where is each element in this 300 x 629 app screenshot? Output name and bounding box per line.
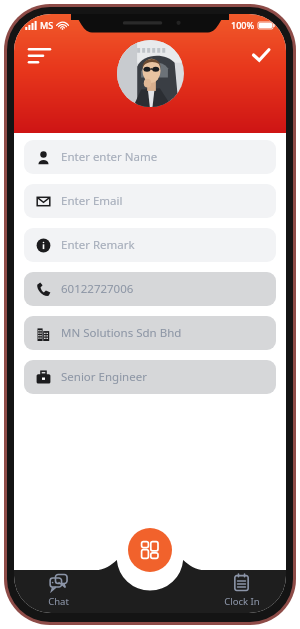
button[interactable]: Enter Remark [24, 228, 276, 262]
button[interactable]: Profile photo [117, 40, 184, 107]
staticText: Enter Email [61, 193, 123, 209]
staticText: MS [40, 19, 54, 31]
button[interactable]: Confirm [246, 40, 276, 70]
button[interactable]: Enter Email [24, 184, 276, 218]
staticText: Enter enter Name [61, 149, 158, 165]
button[interactable]: Clock In [197, 571, 286, 610]
button[interactable]: 60122727006 [24, 272, 276, 306]
button[interactable]: Chat [14, 571, 103, 610]
staticText: Enter Remark [61, 237, 135, 253]
button[interactable]: MN Solutions Sdn Bhd [24, 316, 276, 350]
staticText: MN Solutions Sdn Bhd [61, 325, 182, 341]
button[interactable]: Senior Engineer [24, 360, 276, 394]
staticText: Clock In [224, 595, 260, 608]
button[interactable]: Menu [26, 42, 56, 72]
staticText: 60122727006 [61, 281, 134, 297]
staticText: Senior Engineer [61, 369, 147, 385]
staticText: Chat [48, 595, 69, 608]
button[interactable]: Enter enter Name [24, 140, 276, 174]
button[interactable]: Dashboard [128, 528, 172, 572]
staticText: 100% [231, 19, 255, 31]
